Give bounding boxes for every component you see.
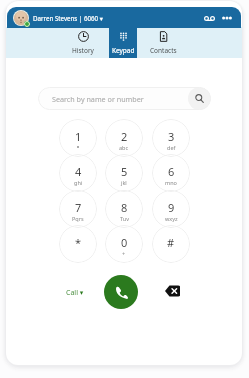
staticText: 9: [168, 200, 175, 215]
button[interactable]: Keypad: [103, 27, 143, 58]
button[interactable]: #: [152, 225, 190, 263]
staticText: +: [122, 250, 126, 257]
button[interactable]: History: [63, 27, 103, 58]
staticText: Call ▾: [66, 288, 84, 298]
staticText: mno: [165, 179, 177, 186]
button[interactable]: Backspace: [163, 283, 181, 299]
button[interactable]: 4: [59, 154, 97, 192]
staticText: Darren Stevens | 6060 ▾: [33, 14, 103, 22]
staticText: 4: [75, 164, 82, 179]
button[interactable]: *: [59, 225, 97, 263]
staticText: 1: [75, 129, 82, 144]
staticText: Keypad: [112, 46, 135, 55]
staticText: History: [72, 46, 94, 55]
button[interactable]: Voicemail: [203, 12, 216, 24]
staticText: Pqrs: [72, 215, 84, 222]
staticText: 7: [75, 200, 82, 215]
button[interactable]: Contacts: [143, 27, 183, 58]
staticText: 2: [121, 129, 128, 144]
staticText: ghi: [74, 179, 83, 186]
staticText: 3: [168, 129, 175, 144]
button[interactable]: Search by name or number: [38, 87, 211, 110]
staticText: Search by name or number: [52, 94, 144, 104]
staticText: wxyz: [165, 215, 178, 222]
staticText: Tuv: [120, 215, 129, 222]
staticText: *: [75, 235, 82, 250]
staticText: Contacts: [150, 46, 177, 55]
button[interactable]: 0: [105, 225, 143, 263]
button[interactable]: 2: [105, 119, 143, 157]
staticText: 6: [168, 164, 175, 179]
button[interactable]: 9: [152, 190, 190, 228]
button[interactable]: 3: [152, 119, 190, 157]
staticText: abc: [119, 144, 129, 151]
button[interactable]: More options: [221, 12, 233, 24]
button[interactable]: Call: [104, 275, 138, 309]
staticText: jkl: [121, 179, 127, 186]
staticText: def: [167, 144, 176, 151]
button[interactable]: 5: [105, 154, 143, 192]
button[interactable]: 1: [59, 119, 97, 157]
staticText: #: [167, 235, 175, 250]
button[interactable]: 7: [59, 190, 97, 228]
button[interactable]: Call ▾: [59, 285, 90, 301]
button[interactable]: Profile: [13, 10, 29, 26]
button[interactable]: 6: [152, 154, 190, 192]
staticText: 0: [121, 235, 128, 250]
staticText: 5: [121, 164, 128, 179]
button[interactable]: 8: [105, 190, 143, 228]
staticText: 8: [121, 200, 128, 215]
